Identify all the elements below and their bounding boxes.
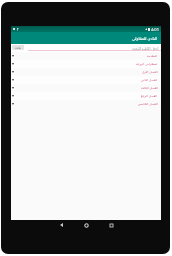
staticText: بحث xyxy=(15,46,22,50)
button[interactable]: Home xyxy=(80,219,92,231)
button[interactable]: بحث xyxy=(12,45,24,50)
staticText: المقدمة xyxy=(147,54,158,58)
staticText: الفصل الثاني xyxy=(141,78,158,82)
staticText: النادي للمقاولي xyxy=(132,36,158,41)
button[interactable]: استعراض الرواية xyxy=(11,60,161,68)
button[interactable]: Recents xyxy=(105,219,117,231)
staticText: استعراض الرواية xyxy=(136,62,158,66)
button[interactable]: Back xyxy=(55,219,67,231)
staticText: 4:01 xyxy=(151,27,159,32)
button[interactable]: الفصل الثاني xyxy=(11,76,161,84)
button[interactable]: الفصل الرابع xyxy=(11,92,161,100)
button[interactable]: الفصل الأول xyxy=(11,68,161,76)
staticText: ادخل الكلمة للبحث xyxy=(132,46,159,51)
button[interactable]: الفصل الخامس xyxy=(11,100,161,108)
staticText: الفصل الثالث xyxy=(141,86,158,90)
staticText: الفصل الرابع xyxy=(141,94,158,98)
button[interactable]: الفصل الثالث xyxy=(11,84,161,92)
staticText: الفصل الأول xyxy=(142,70,158,74)
staticText: الفصل الخامس xyxy=(138,102,158,106)
button[interactable]: المقدمة xyxy=(11,52,161,60)
